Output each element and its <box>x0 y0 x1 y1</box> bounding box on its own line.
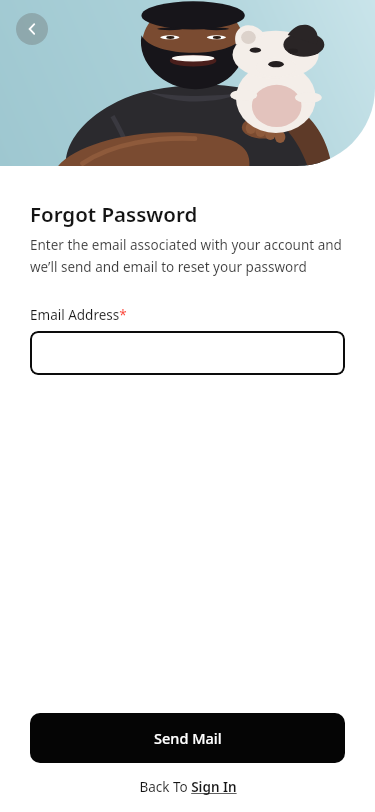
staticText: Forgot Password <box>30 200 198 228</box>
staticText: Back To Sign In <box>139 778 237 796</box>
staticText: Email Address* <box>30 306 127 324</box>
button[interactable]: Back <box>16 13 48 45</box>
staticText: Enter the email associated with your acc… <box>30 236 347 276</box>
button[interactable]: Back To Sign In <box>135 776 241 798</box>
button[interactable]: Send Mail <box>30 713 345 763</box>
button[interactable] <box>30 331 345 375</box>
staticText: Send Mail <box>154 728 222 748</box>
